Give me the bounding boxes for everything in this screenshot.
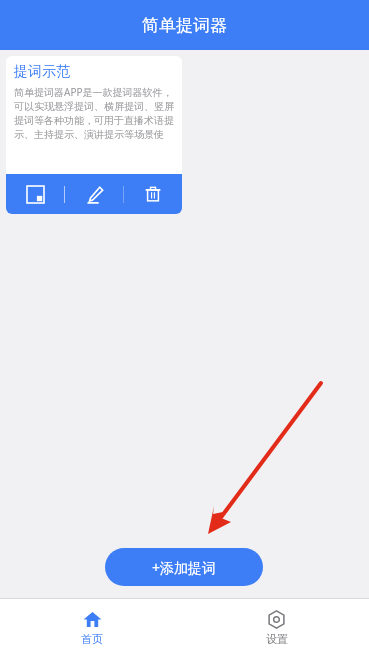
button[interactable]: Edit (65, 174, 123, 214)
button[interactable]: 提词示范 (6, 56, 182, 214)
button[interactable]: 首页 (0, 599, 184, 656)
staticText: 提词示范 (14, 63, 70, 81)
staticText: +添加提词 (152, 558, 217, 577)
staticText: 首页 (81, 632, 103, 646)
staticText: 简单提词器 (142, 15, 227, 36)
button[interactable]: Delete (124, 174, 182, 214)
button[interactable]: +添加提词 (105, 548, 263, 586)
button[interactable]: Float window (6, 174, 64, 214)
staticText: 简单提词器APP是一款提词器软件，可以实现悬浮提词、横屏提词、竖屏提词等各种功能… (14, 85, 177, 141)
staticText: 设置 (266, 632, 288, 646)
button[interactable]: 设置 (184, 599, 369, 656)
